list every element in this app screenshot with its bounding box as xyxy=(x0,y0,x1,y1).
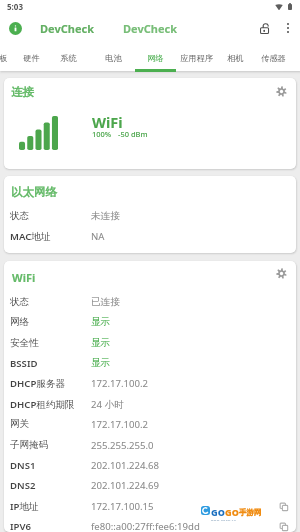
staticText: 未连接 xyxy=(91,210,120,222)
staticText: DHCP租约期限 xyxy=(10,398,75,411)
button[interactable]: 网络 xyxy=(4,312,296,332)
button[interactable]: 系统 xyxy=(53,48,84,71)
staticText: 255.255.255.0 xyxy=(91,439,154,452)
button[interactable]: App info xyxy=(9,22,22,35)
staticText: NA xyxy=(91,230,105,243)
staticText: BSSID xyxy=(10,357,38,370)
button[interactable]: Copy xyxy=(277,500,290,513)
button[interactable]: 状态 xyxy=(4,292,296,312)
staticText: 应用程序 xyxy=(180,53,213,63)
staticText: 手游网 xyxy=(239,508,262,517)
staticText: IP地址 xyxy=(10,500,39,513)
staticText: 5:03 xyxy=(7,1,23,12)
staticText: 172.17.100.15 xyxy=(91,500,154,513)
button[interactable]: 安全性 xyxy=(4,333,296,353)
button[interactable]: 传感器 xyxy=(253,48,294,71)
staticText: DNS1 xyxy=(10,459,36,472)
staticText: 显示 xyxy=(91,316,111,328)
staticText: IPV6 xyxy=(10,520,31,532)
staticText: 状态 xyxy=(10,296,30,308)
staticText: DevCheck xyxy=(123,21,177,36)
staticText: 显示 xyxy=(91,337,111,349)
staticText: GO xyxy=(225,506,239,518)
button[interactable]: Copy xyxy=(277,520,290,532)
staticText: 100% xyxy=(92,129,112,139)
staticText: 网络 xyxy=(10,316,30,328)
button[interactable]: DHCP服务器 xyxy=(4,373,296,393)
button[interactable]: 网络 xyxy=(140,48,171,71)
staticText: 已连接 xyxy=(91,296,120,308)
staticText: DevCheck xyxy=(40,21,94,36)
button[interactable]: 板 xyxy=(0,48,13,71)
staticText: 硬件 xyxy=(23,53,40,63)
button[interactable]: Unlock xyxy=(255,18,275,38)
staticText: MAC地址 xyxy=(10,230,51,243)
staticText: 172.17.100.2 xyxy=(91,418,149,431)
staticText: 传感器 xyxy=(261,53,286,63)
staticText: 系统 xyxy=(60,53,77,63)
staticText: 板 xyxy=(0,53,8,63)
button[interactable]: MAC地址 xyxy=(4,226,296,246)
button[interactable]: 硬件 xyxy=(16,48,47,71)
button[interactable]: More options xyxy=(278,18,297,37)
button[interactable]: 相机 xyxy=(220,48,251,71)
staticText: 202.101.224.68 xyxy=(91,459,160,472)
staticText: 相机 xyxy=(227,53,244,63)
button[interactable]: 应用程序 xyxy=(170,48,222,71)
staticText: 以太网络 xyxy=(11,185,57,199)
staticText: WiFi xyxy=(12,270,36,285)
staticText: fe80::a00:27ff:fee6:19dd xyxy=(91,520,200,532)
staticText: 安全性 xyxy=(10,337,39,349)
staticText: 子网掩码 xyxy=(10,439,49,451)
staticText: 202.101.224.69 xyxy=(91,479,160,492)
button[interactable]: DNS2 xyxy=(4,475,296,495)
button[interactable]: 电池 xyxy=(98,48,129,71)
staticText: GO xyxy=(211,506,225,518)
staticText: 状态 xyxy=(10,210,30,222)
button[interactable]: BSSID xyxy=(4,353,296,373)
button[interactable]: 网关 xyxy=(4,414,296,434)
staticText: -50 dBm xyxy=(118,129,148,139)
staticText: 连接 xyxy=(11,85,34,99)
button[interactable]: IP地址 xyxy=(4,496,296,516)
staticText: 电池 xyxy=(105,53,122,63)
button[interactable]: 子网掩码 xyxy=(4,435,296,455)
button[interactable]: DHCP租约期限 xyxy=(4,394,296,414)
staticText: 24 小时 xyxy=(91,398,124,411)
staticText: 网络 xyxy=(147,53,164,63)
staticText: DNS2 xyxy=(10,479,36,492)
staticText: DHCP服务器 xyxy=(10,377,66,390)
button[interactable]: DNS1 xyxy=(4,455,296,475)
button[interactable]: 状态 xyxy=(4,206,296,226)
staticText: W W W . G O G O . C N xyxy=(211,518,236,521)
staticText: 网关 xyxy=(10,418,30,430)
staticText: WiFi xyxy=(92,112,123,132)
staticText: 显示 xyxy=(91,357,111,369)
button[interactable]: IPV6 xyxy=(4,516,296,532)
staticText: 172.17.100.2 xyxy=(91,377,149,390)
